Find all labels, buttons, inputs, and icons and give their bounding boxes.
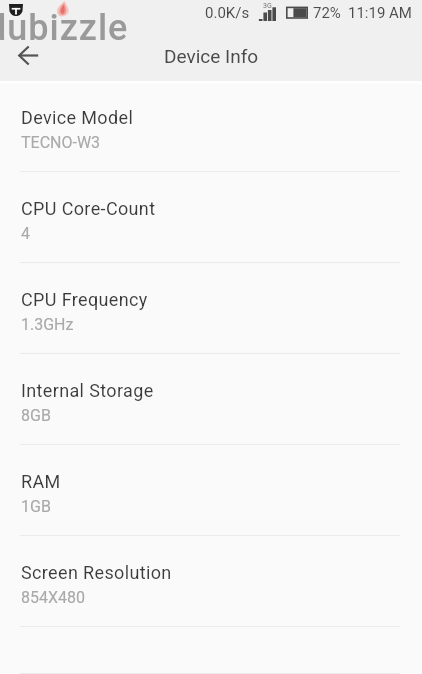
- staticText: RAM: [21, 471, 61, 492]
- staticText: Internal Storage: [21, 380, 154, 401]
- staticText: 1GB: [21, 497, 51, 516]
- staticText: 0.0K/s: [205, 4, 250, 22]
- staticText: Device Info: [164, 45, 259, 67]
- staticText: CPU Core-Count: [21, 198, 156, 219]
- staticText: Screen Resolution: [21, 562, 172, 583]
- staticText: 8GB: [21, 406, 51, 425]
- staticText: Device Model: [21, 107, 134, 128]
- staticText: 4: [21, 224, 30, 243]
- button[interactable]: Screen Resolution: [0, 536, 422, 627]
- staticText: 1.3GHz: [21, 315, 74, 334]
- staticText: dubizzle: [0, 7, 129, 49]
- staticText: 3G: [263, 2, 272, 10]
- staticText: 11:19 AM: [348, 4, 412, 22]
- staticText: 72%: [313, 4, 341, 22]
- staticText: 854X480: [21, 588, 85, 607]
- button[interactable]: Back: [6, 31, 50, 79]
- button[interactable]: Internal Storage: [0, 354, 422, 445]
- staticText: CPU Frequency: [21, 289, 148, 310]
- staticText: TECNO-W3: [21, 133, 101, 152]
- button[interactable]: RAM: [0, 445, 422, 536]
- button[interactable]: CPU Frequency: [0, 263, 422, 354]
- button[interactable]: Device Model: [0, 81, 422, 172]
- button[interactable]: CPU Core-Count: [0, 172, 422, 263]
